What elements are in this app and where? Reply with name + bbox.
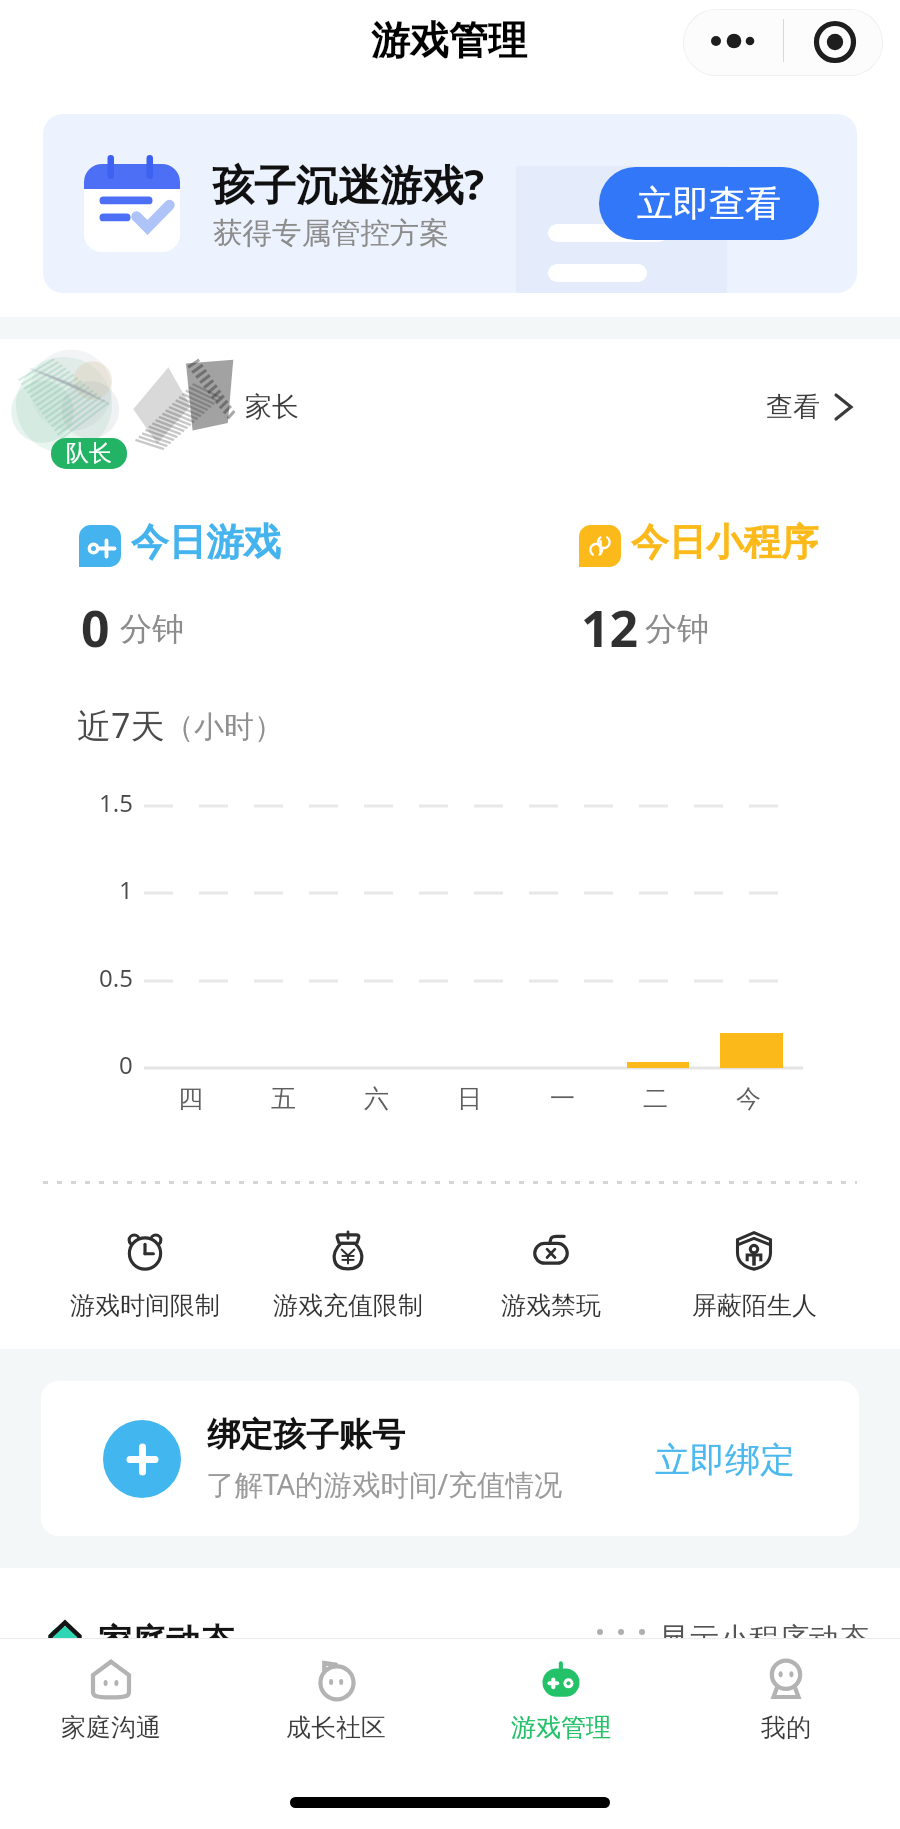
staticText: 立即查看 — [637, 181, 781, 226]
button[interactable]: More options — [683, 9, 783, 76]
staticText: 获得专属管控方案 — [213, 215, 449, 252]
staticText: 分钟 — [120, 609, 184, 649]
staticText: 家庭动态 — [98, 1620, 234, 1663]
staticText: 队长 — [66, 439, 112, 468]
staticText: 今 — [736, 1083, 761, 1114]
staticText: 立即绑定 — [655, 1438, 795, 1482]
staticText: 日 — [457, 1083, 482, 1114]
staticText: 游戏禁玩 — [501, 1290, 601, 1321]
button[interactable]: 立即查看 — [599, 167, 819, 240]
staticText: 六 — [364, 1083, 389, 1114]
staticText: 0 — [119, 1048, 133, 1081]
staticText: 了解TA的游戏时间/充值情况 — [206, 1465, 563, 1504]
staticText: 今日小程序 — [631, 519, 819, 566]
staticText: 屏蔽陌生人 — [692, 1290, 817, 1321]
staticText: 我的 — [761, 1712, 811, 1743]
button[interactable]: 绑定孩子账号 — [41, 1381, 859, 1536]
staticText: （小时） — [164, 708, 284, 746]
staticText: 五 — [271, 1083, 296, 1114]
staticText: 四 — [178, 1083, 203, 1114]
staticText: 游戏时间限制 — [70, 1290, 220, 1321]
staticText: 1 — [119, 873, 133, 906]
button[interactable]: 孩子沉迷游戏? — [43, 114, 857, 293]
staticText: 近7天 — [77, 702, 165, 748]
staticText: 家庭沟通 — [61, 1712, 161, 1743]
staticText: 孩子沉迷游戏? — [212, 155, 485, 212]
staticText: 家长 — [245, 390, 299, 424]
staticText: 绑定孩子账号 — [207, 1414, 405, 1456]
button[interactable]: 我的 — [674, 1639, 898, 1764]
button[interactable]: 今日游戏 — [79, 515, 419, 650]
staticText: 今日游戏 — [131, 519, 281, 566]
button[interactable]: 游戏时间限制 — [35, 1225, 255, 1335]
button[interactable]: Close mini program — [784, 9, 883, 76]
button[interactable]: 屏蔽陌生人 — [644, 1225, 864, 1335]
staticText: 12 — [581, 594, 639, 662]
button[interactable]: 游戏充值限制 — [238, 1225, 458, 1335]
button[interactable]: 游戏管理 — [449, 1639, 673, 1764]
staticText: 游戏充值限制 — [273, 1290, 423, 1321]
button[interactable]: 队长 — [0, 339, 900, 487]
button[interactable]: 今日小程序 — [579, 515, 900, 650]
staticText: 查看 — [766, 390, 820, 424]
staticText: 0.5 — [99, 961, 133, 994]
staticText: 游戏管理 — [511, 1712, 611, 1743]
staticText: 1.5 — [99, 786, 133, 819]
staticText: 二 — [643, 1083, 668, 1114]
staticText: 分钟 — [645, 609, 709, 649]
staticText: 0 — [81, 594, 110, 662]
button[interactable]: 家庭沟通 — [0, 1639, 223, 1764]
staticText: 一 — [550, 1083, 575, 1114]
staticText: 成长社区 — [286, 1712, 386, 1743]
staticText: 游戏管理 — [371, 16, 527, 65]
button[interactable]: 游戏禁玩 — [441, 1225, 661, 1335]
button[interactable]: 成长社区 — [224, 1639, 448, 1764]
staticText: 显示小程序动态 — [659, 1620, 869, 1658]
